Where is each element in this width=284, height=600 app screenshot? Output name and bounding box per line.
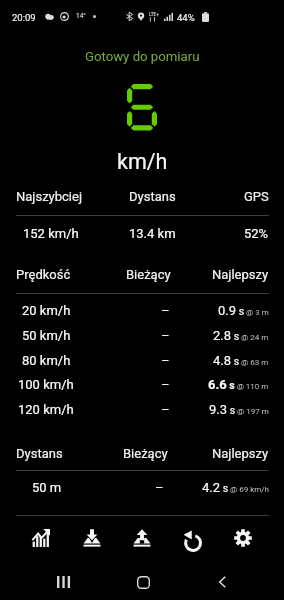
staticText: –: [161, 353, 170, 368]
button[interactable]: Ustawienia: [221, 521, 265, 555]
button[interactable]: Statystyki: [19, 521, 63, 555]
staticText: Najlepszy: [212, 267, 269, 282]
staticText: Gotowy do pomiaru: [85, 49, 200, 64]
staticText: 14°: [76, 12, 86, 20]
staticText: Najlepszy: [212, 446, 269, 461]
button[interactable]: Ostatnie: [41, 565, 85, 599]
staticText: –: [161, 303, 170, 318]
staticText: 52%: [244, 226, 269, 241]
staticText: 20 km/h: [22, 303, 71, 318]
button[interactable]: Resetuj: [170, 522, 214, 556]
staticText: –: [161, 328, 170, 343]
button[interactable]: Ekran główny: [121, 565, 165, 599]
staticText: Dystans: [16, 446, 63, 461]
staticText: –: [161, 377, 170, 392]
staticText: 80 km/h: [22, 353, 71, 368]
button[interactable]: Importuj: [70, 521, 114, 555]
staticText: Bieżący: [126, 267, 171, 282]
staticText: Dystans: [129, 189, 176, 204]
staticText: LTE+: [149, 12, 159, 17]
staticText: 50 m: [32, 480, 62, 495]
staticText: Prędkość: [16, 267, 71, 282]
staticText: 6.6 s @ 110 m: [208, 377, 269, 392]
staticText: 100 km/h: [18, 377, 74, 392]
staticText: 0.9 s @ 3 m: [218, 303, 269, 318]
staticText: Najszybciej: [16, 189, 83, 204]
button[interactable]: Eksportuj: [120, 521, 164, 555]
staticText: –: [155, 480, 164, 495]
staticText: –: [161, 402, 170, 417]
staticText: 4.8 s @ 63 m: [213, 353, 269, 368]
staticText: 152 km/h: [23, 226, 79, 241]
staticText: 50 km/h: [22, 328, 71, 343]
staticText: Bieżący: [123, 446, 168, 461]
staticText: 4.2 s @ 69 km/h: [202, 480, 269, 495]
staticText: 13.4 km: [129, 226, 176, 241]
staticText: 2.8 s @ 24 m: [213, 328, 269, 343]
staticText: km/h: [117, 149, 168, 173]
button[interactable]: Wstecz: [200, 565, 244, 599]
staticText: GPS: [244, 189, 269, 204]
staticText: 44%: [177, 12, 195, 23]
staticText: 9.3 s @ 197 m: [209, 402, 269, 417]
staticText: 20:09: [12, 12, 36, 23]
staticText: 120 km/h: [18, 402, 74, 417]
